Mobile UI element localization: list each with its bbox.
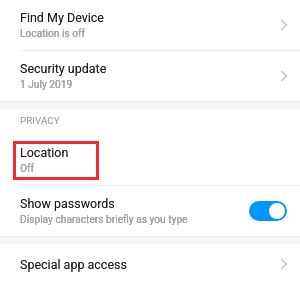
staticText: Location xyxy=(20,145,69,160)
staticText: Security update xyxy=(20,61,107,76)
button[interactable]: Special app access xyxy=(0,244,300,282)
staticText: 1 July 2019 xyxy=(20,79,73,91)
staticText: Off xyxy=(20,163,35,175)
staticText: Display characters briefly as you type xyxy=(20,214,188,226)
button[interactable]: Security update xyxy=(0,51,300,101)
staticText: Location is off xyxy=(20,28,86,40)
staticText: Off xyxy=(20,163,35,175)
staticText: Location is off xyxy=(20,28,86,40)
staticText: Display characters briefly as you type xyxy=(20,214,188,226)
button[interactable]: Location xyxy=(0,141,300,185)
staticText: Show passwords xyxy=(20,196,115,211)
staticText: Location xyxy=(20,145,69,160)
staticText: Find My Device xyxy=(20,10,104,25)
button[interactable]: Show passwords xyxy=(0,186,300,236)
button[interactable]: Show passwords toggle xyxy=(249,201,287,221)
staticText: Special app access xyxy=(20,257,127,272)
staticText: PRIVACY xyxy=(20,115,60,126)
staticText: Security update xyxy=(20,61,107,76)
staticText: Find My Device xyxy=(20,10,104,25)
staticText: Special app access xyxy=(20,257,127,272)
staticText: 1 July 2019 xyxy=(20,79,73,91)
other: Location highlight xyxy=(13,141,99,180)
button[interactable]: Find My Device xyxy=(0,0,300,50)
staticText: Show passwords xyxy=(20,196,115,211)
